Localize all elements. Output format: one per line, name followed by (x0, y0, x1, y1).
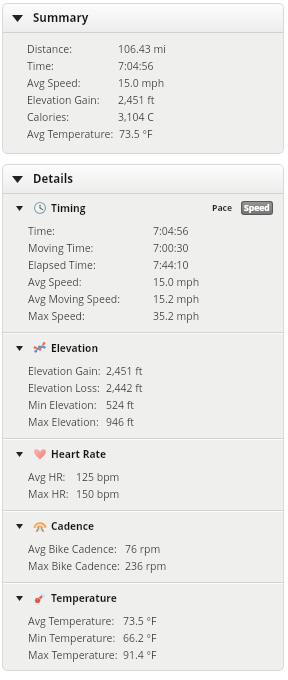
staticText: 2,442 ft (106, 381, 143, 395)
staticText: 2,451 ft (106, 364, 143, 378)
staticText: Details (33, 171, 73, 187)
staticText: Time: (28, 224, 55, 238)
button[interactable]: Cadence (16, 512, 273, 540)
staticText: Avg Speed: (28, 275, 82, 289)
staticText: Avg HR: (28, 470, 66, 484)
staticText: 2,451 ft (118, 93, 155, 107)
staticText: 66.2 °F (123, 631, 157, 645)
staticText: Calories: (27, 110, 70, 124)
staticText: Max Speed: (28, 309, 85, 323)
staticText: Elevation Gain: (27, 93, 100, 107)
staticText: Elevation Loss: (28, 381, 100, 395)
staticText: Min Elevation: (28, 398, 97, 412)
staticText: Min Temperature: (28, 631, 116, 645)
staticText: 106.43 mi (118, 42, 166, 56)
staticText: Avg Temperature: (28, 614, 115, 628)
staticText: 946 ft (106, 415, 135, 429)
staticText: 91.4 °F (123, 648, 157, 662)
button[interactable]: Elevation (16, 334, 273, 362)
staticText: 7:00:30 (153, 241, 189, 255)
button[interactable]: Heart Rate (16, 440, 273, 468)
staticText: 150 bpm (76, 487, 120, 501)
staticText: 125 bpm (76, 470, 120, 484)
staticText: 7:04:56 (118, 59, 154, 73)
button[interactable]: Details (2, 164, 284, 194)
staticText: Pace (212, 202, 233, 214)
button[interactable]: Timing (16, 194, 273, 222)
staticText: Cadence (51, 519, 95, 533)
button[interactable]: Pace (207, 201, 238, 215)
staticText: Distance: (27, 42, 72, 56)
staticText: Max Temperature: (28, 648, 118, 662)
staticText: 15.2 mph (153, 292, 200, 306)
staticText: Avg Bike Cadence: (28, 542, 117, 556)
staticText: Elapsed Time: (28, 258, 96, 272)
staticText: Avg Moving Speed: (28, 292, 121, 306)
staticText: 15.0 mph (153, 275, 200, 289)
staticText: Max Elevation: (28, 415, 99, 429)
staticText: 524 ft (106, 398, 135, 412)
staticText: Avg Temperature: (27, 127, 114, 141)
staticText: 73.5 °F (119, 127, 153, 141)
button[interactable]: Speed (242, 202, 272, 214)
staticText: 7:04:56 (153, 224, 189, 238)
button[interactable]: Temperature (16, 584, 273, 612)
staticText: Elevation (51, 341, 99, 355)
staticText: Temperature (51, 591, 117, 605)
staticText: Avg Speed: (27, 76, 81, 90)
staticText: 236 rpm (125, 559, 167, 573)
staticText: 35.2 mph (153, 309, 200, 323)
staticText: Elevation Gain: (28, 364, 101, 378)
staticText: Summary (33, 10, 89, 26)
staticText: 76 rpm (125, 542, 161, 556)
staticText: Max HR: (28, 487, 69, 501)
staticText: Heart Rate (51, 447, 106, 461)
staticText: 15.0 mph (118, 76, 165, 90)
staticText: 73.5 °F (123, 614, 157, 628)
staticText: 3,104 C (118, 110, 154, 124)
staticText: Moving Time: (28, 241, 94, 255)
staticText: Max Bike Cadence: (28, 559, 120, 573)
staticText: Speed (244, 202, 270, 214)
staticText: 7:44:10 (153, 258, 189, 272)
button[interactable]: Summary (2, 3, 284, 33)
staticText: Timing (51, 201, 86, 215)
staticText: Time: (27, 59, 54, 73)
